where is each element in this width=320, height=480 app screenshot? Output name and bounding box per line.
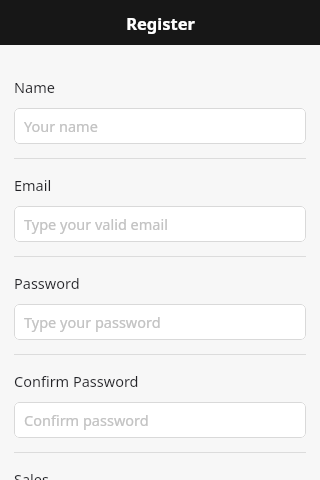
- button[interactable]: Your name: [14, 108, 306, 144]
- staticText: Sales: [14, 469, 49, 480]
- staticText: Register: [126, 12, 195, 34]
- staticText: Email: [14, 175, 52, 195]
- staticText: Password: [14, 273, 80, 293]
- button[interactable]: Type your password: [14, 304, 306, 340]
- staticText: Your name: [24, 116, 98, 136]
- staticText: Type your valid email: [24, 214, 168, 234]
- staticText: Type your password: [24, 312, 161, 332]
- staticText: Confirm password: [24, 410, 149, 430]
- staticText: Name: [14, 77, 55, 97]
- button[interactable]: Type your valid email: [14, 206, 306, 242]
- staticText: Confirm Password: [14, 371, 139, 391]
- button[interactable]: Confirm password: [14, 402, 306, 438]
